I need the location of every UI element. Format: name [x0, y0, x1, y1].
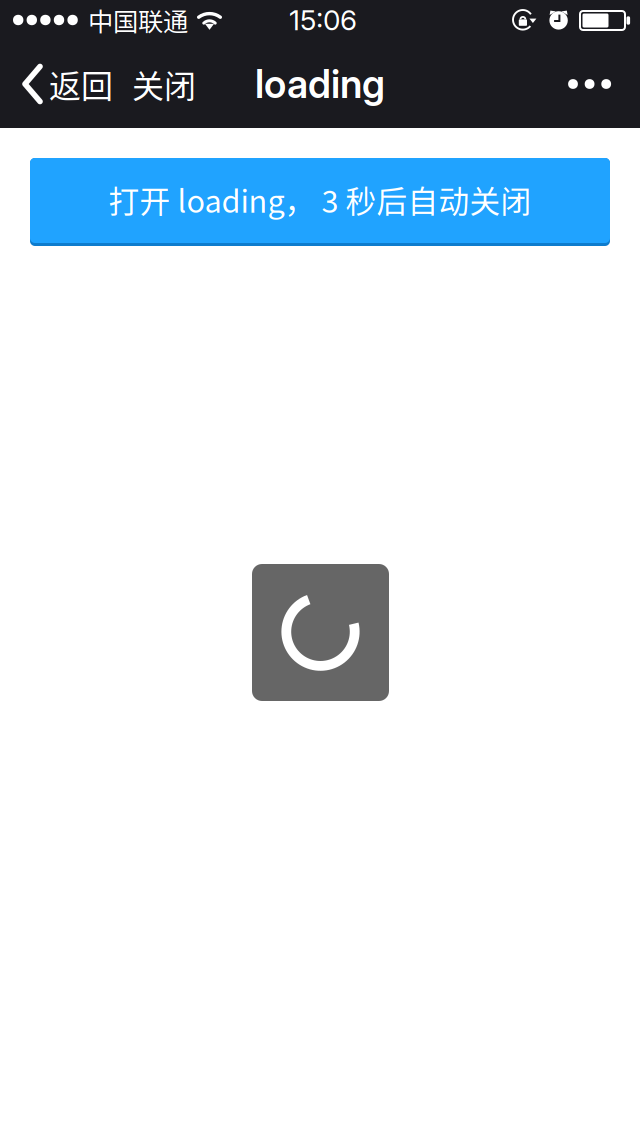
button[interactable]: 返回 [0, 40, 116, 128]
button[interactable]: 打开 loading， 3 秒后自动关闭 [30, 158, 610, 246]
staticText: 返回 [49, 61, 113, 107]
staticText: 关闭 [132, 61, 196, 107]
staticText: 中国联通 [88, 2, 188, 38]
staticText: 15:06 [289, 3, 357, 37]
staticText: 打开 loading， 3 秒后自动关闭 [108, 177, 531, 222]
button[interactable]: More options [552, 40, 628, 128]
staticText: loading [255, 61, 385, 107]
button[interactable]: 关闭 [132, 40, 214, 128]
